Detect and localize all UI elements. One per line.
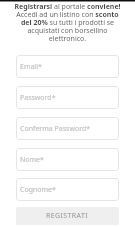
staticText: Registrarsi al portale conviene! Accedi … (12, 2, 123, 43)
staticText: Cognome* (20, 185, 56, 195)
button[interactable]: REGISTRATI (16, 207, 119, 225)
button[interactable]: Password* (16, 86, 119, 109)
staticText: Conferma Password* (20, 124, 91, 134)
staticText: REGISTRATI (46, 211, 89, 221)
button[interactable]: Email* (16, 55, 119, 78)
button[interactable]: Nome* (16, 148, 119, 171)
button[interactable]: Cognome* (16, 178, 119, 201)
staticText: Email* (20, 62, 42, 72)
staticText: Nome* (20, 155, 44, 165)
button[interactable]: Conferma Password* (16, 117, 119, 140)
staticText: Password* (20, 93, 56, 103)
